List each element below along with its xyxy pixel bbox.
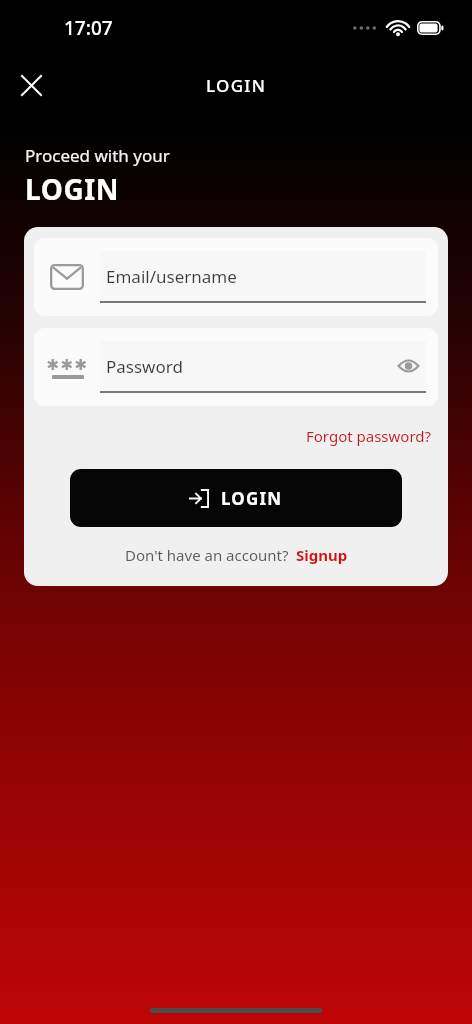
button[interactable]: Show password xyxy=(393,351,423,381)
staticText: LOGIN xyxy=(221,487,283,510)
staticText: Proceed with your xyxy=(25,144,170,167)
staticText: ✱✱✱ xyxy=(46,356,89,373)
button[interactable]: Forgot password? xyxy=(300,422,438,450)
button[interactable]: Don't have an account? xyxy=(34,545,438,565)
staticText: Email/username xyxy=(106,265,237,288)
button[interactable]: Email/username xyxy=(34,238,438,316)
button[interactable]: Close xyxy=(10,64,52,106)
staticText: Don't have an account? xyxy=(125,545,289,565)
staticText: Signup xyxy=(296,545,348,565)
staticText: LOGIN xyxy=(206,74,267,97)
staticText: LOGIN xyxy=(25,170,120,208)
staticText: Password xyxy=(106,355,183,378)
button[interactable]: ✱✱✱ xyxy=(34,328,438,406)
button[interactable]: LOGIN xyxy=(70,469,402,527)
staticText: Forgot password? xyxy=(306,426,432,446)
staticText: 17:07 xyxy=(64,15,113,41)
